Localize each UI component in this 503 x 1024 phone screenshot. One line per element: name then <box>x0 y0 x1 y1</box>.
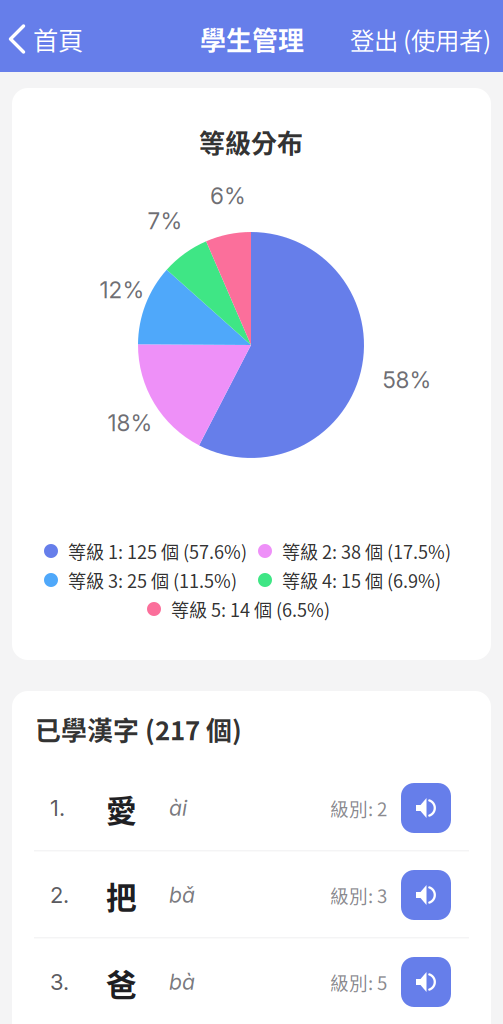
staticText: 等級分布 <box>199 123 303 161</box>
staticText: 58% <box>382 366 431 394</box>
button[interactable]: 2. <box>12 691 491 778</box>
button[interactable]: 1. <box>12 691 491 778</box>
staticText: 登出 (使用者) <box>350 21 491 57</box>
button[interactable]: 3. <box>12 691 491 778</box>
staticText: 等級 4: 15 個 (6.9%) <box>282 567 441 593</box>
staticText: 首頁 <box>33 21 83 57</box>
staticText: 爸 <box>106 961 137 1005</box>
staticText: bǎ <box>169 882 195 908</box>
staticText: 級別: 3 <box>330 881 387 908</box>
staticText: 18% <box>107 409 152 437</box>
staticText: 1. <box>50 795 65 821</box>
staticText: bà <box>169 969 195 995</box>
staticText: 等級 1: 125 個 (57.6%) <box>68 538 247 564</box>
staticText: 已學漢字 (217 個) <box>35 710 242 748</box>
button[interactable]: 首頁 <box>0 0 92 72</box>
staticText: 6% <box>210 182 246 210</box>
staticText: 把 <box>106 874 137 918</box>
staticText: 3. <box>50 969 69 995</box>
staticText: 2. <box>50 882 69 908</box>
staticText: 等級 2: 38 個 (17.5%) <box>282 538 451 564</box>
staticText: 學生管理 <box>200 20 304 58</box>
staticText: 12% <box>99 276 144 304</box>
staticText: 級別: 2 <box>330 794 387 821</box>
button[interactable]: 登出 (使用者) <box>0 0 503 72</box>
staticText: ài <box>169 795 187 821</box>
staticText: 級別: 5 <box>330 968 387 995</box>
staticText: 愛 <box>106 787 137 831</box>
staticText: 等級 3: 25 個 (11.5%) <box>68 567 237 593</box>
staticText: 7% <box>147 207 182 235</box>
staticText: 等級 5: 14 個 (6.5%) <box>171 596 330 622</box>
